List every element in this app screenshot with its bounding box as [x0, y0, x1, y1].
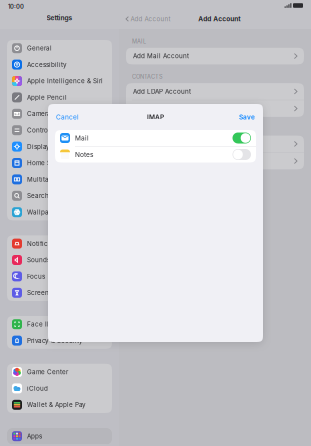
button[interactable]: Notes [55, 146, 256, 162]
staticText: General [27, 44, 52, 52]
staticText: Apple Intelligence & Siri [27, 77, 103, 85]
staticText: Camera [27, 110, 51, 118]
staticText: Apps [27, 432, 42, 440]
staticText: Display & Brightness [27, 143, 90, 150]
staticText: Add CalDAV Account [133, 140, 198, 148]
button[interactable]: Apple Pencil [7, 89, 112, 106]
button[interactable]: Add CardDAV Account [126, 100, 304, 117]
button[interactable]: iCloud [7, 380, 112, 397]
button[interactable]: Add CalDAV Account [126, 136, 304, 152]
staticText: Add Account [130, 15, 170, 23]
button[interactable]: General [7, 40, 112, 56]
button[interactable]: Focus [7, 268, 112, 285]
button[interactable]: Add Mail Account [126, 48, 304, 64]
button[interactable]: Add Account [126, 15, 170, 23]
button[interactable]: Multitasking & Gestures [7, 171, 112, 188]
staticText: Notes [75, 150, 93, 158]
staticText: Notifications [27, 240, 67, 247]
staticText: Face ID & Passcode [27, 320, 90, 328]
button[interactable]: Wallpaper [7, 204, 112, 220]
button[interactable]: Cancel [56, 113, 79, 121]
staticText: iCloud [27, 385, 48, 392]
button[interactable]: Add LDAP Account [126, 83, 304, 100]
button[interactable]: Mail [55, 130, 256, 146]
staticText: Wallpaper [27, 208, 59, 216]
button[interactable]: Search [7, 188, 112, 204]
staticText: Multitasking & Gestures [27, 176, 100, 183]
button[interactable]: Apple Intelligence & Siri [7, 73, 112, 89]
button[interactable]: Apps [7, 428, 112, 444]
button[interactable]: Screen Time [7, 285, 112, 301]
staticText: Screen Time [27, 289, 66, 297]
staticText: Search [27, 192, 49, 200]
staticText: Accessibility [27, 61, 67, 68]
staticText: Save [239, 113, 255, 121]
staticText: MAIL [132, 38, 146, 45]
button[interactable]: Notifications [7, 235, 112, 252]
staticText: Cancel [56, 113, 79, 121]
button[interactable]: Face ID & Passcode [7, 316, 112, 332]
button[interactable]: Control Centre [7, 122, 112, 138]
staticText: CONTACTS [132, 73, 163, 80]
staticText: Add LDAP Account [133, 88, 191, 95]
staticText: Add Subscribed Calendar [133, 157, 213, 165]
button[interactable]: Game Center [7, 364, 112, 380]
staticText: CALENDARS [132, 126, 166, 133]
staticText: Settings [46, 14, 72, 22]
button[interactable]: Home Screen & App Library [7, 155, 112, 171]
staticText: Control Centre [27, 126, 73, 134]
button[interactable]: Display & Brightness [7, 138, 112, 155]
button[interactable]: Wallet & Apple Pay [7, 397, 112, 413]
button[interactable]: Privacy & Security [7, 332, 112, 349]
button[interactable]: Save [239, 113, 255, 121]
staticText: Focus [27, 273, 45, 280]
staticText: Wallet & Apple Pay [27, 401, 86, 409]
staticText: Sounds [27, 256, 50, 264]
button[interactable]: Add Subscribed Calendar [126, 153, 304, 169]
button[interactable]: Sounds [7, 252, 112, 268]
staticText: Game Center [27, 368, 68, 376]
staticText: 10:00 [8, 3, 24, 10]
staticText: Add Account [198, 15, 240, 23]
staticText: IMAP [147, 113, 164, 121]
staticText: Add Mail Account [133, 52, 189, 60]
staticText: Home Screen & App Library [27, 159, 108, 167]
button[interactable]: Camera [7, 106, 112, 122]
staticText: Apple Pencil [27, 94, 67, 101]
button[interactable]: Accessibility [7, 56, 112, 73]
staticText: Mail [75, 134, 89, 142]
staticText: Privacy & Security [27, 337, 83, 344]
